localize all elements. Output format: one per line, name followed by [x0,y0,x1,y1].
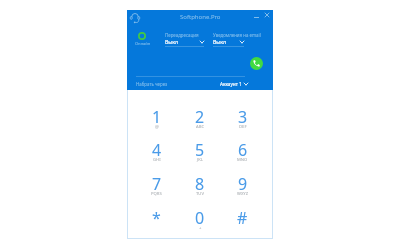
staticText: 9 [238,173,248,195]
staticText: @ [155,124,159,130]
other: Headset [130,13,140,23]
button[interactable]: 7 [135,173,178,207]
staticText: # [237,207,248,229]
button[interactable]: Переадресация [165,32,204,48]
button[interactable]: * [135,207,178,241]
staticText: JKL [197,157,203,163]
button[interactable]: 4 [135,139,178,173]
staticText: PQRS [151,191,162,197]
button[interactable]: Close [261,9,273,21]
staticText: 5 [195,139,205,161]
staticText: Набрать через [136,81,168,87]
staticText: Выкл [213,38,227,45]
button[interactable]: 8 [178,173,221,207]
button[interactable]: Minimize [250,11,262,23]
button[interactable]: 9 [221,173,264,207]
button[interactable]: Call [250,57,263,70]
staticText: ABC [196,124,205,130]
staticText: Уведомления на email [213,32,261,38]
staticText: Выкл [165,38,179,45]
button[interactable]: 0 [178,207,221,241]
staticText: DEF [239,124,247,130]
button[interactable]: # [221,207,264,241]
staticText: Переадресация [165,32,199,38]
staticText: + [199,225,202,231]
button[interactable]: 5 [178,139,221,173]
staticText: 3 [238,106,248,128]
button[interactable]: Онлайн [131,28,155,46]
staticText: 8 [195,173,205,195]
button[interactable]: 2 [178,106,221,140]
button[interactable]: 6 [221,139,264,173]
button[interactable]: 1 [135,106,178,140]
staticText: Онлайн [135,41,151,47]
staticText: 0 [195,207,205,229]
staticText: 1 [152,106,162,128]
staticText: TUV [196,191,204,197]
staticText: WXYZ [237,191,249,197]
button[interactable]: Аккаунт 1 [220,81,242,87]
staticText: GHI [153,157,161,163]
staticText: Softphone.Pro [180,13,221,21]
staticText: 6 [238,139,248,161]
button[interactable]: Уведомления на email [213,32,244,48]
staticText: 7 [152,173,162,195]
staticText: MNO [237,157,248,163]
button[interactable]: 3 [221,106,264,140]
staticText: * [152,207,161,229]
staticText: 4 [152,139,162,161]
staticText: 2 [195,106,205,128]
